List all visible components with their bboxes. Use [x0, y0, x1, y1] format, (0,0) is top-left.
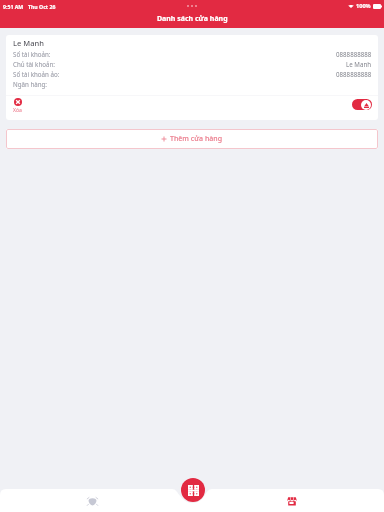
staticText: 0888888888: [336, 50, 372, 58]
staticText: Thu Oct 26: [28, 3, 56, 10]
button[interactable]: Stores: [282, 491, 302, 511]
button[interactable]: Xóa: [13, 98, 22, 114]
staticText: Thêm cửa hàng: [170, 134, 223, 144]
staticText: 100%: [356, 2, 371, 10]
staticText: Xóa: [13, 107, 22, 114]
button[interactable]: Notifications: [82, 491, 102, 511]
button[interactable]: Thêm cửa hàng: [6, 129, 378, 149]
staticText: Chủ tài khoản:: [13, 60, 55, 68]
staticText: 0888888888: [336, 70, 372, 78]
button[interactable]: Toggle store active: [352, 99, 372, 110]
staticText: Ngân hàng:: [13, 80, 47, 88]
staticText: 9:51 AM: [3, 3, 24, 10]
staticText: Danh sách cửa hàng: [157, 14, 228, 24]
staticText: Số tài khoản ảo:: [13, 70, 60, 78]
staticText: Số tài khoản:: [13, 50, 51, 58]
staticText: Le Manh: [346, 60, 372, 68]
button[interactable]: Scan QR code: [181, 478, 205, 502]
staticText: Le Manh: [13, 38, 44, 48]
